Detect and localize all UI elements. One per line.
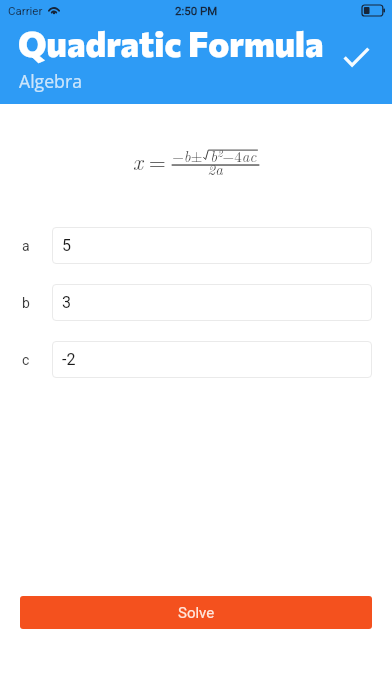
staticText: 2:50 PM <box>175 4 218 17</box>
button[interactable]: 3 <box>52 284 372 321</box>
staticText: -2 <box>62 350 76 369</box>
button[interactable]: Done <box>332 40 380 88</box>
staticText: Algebra <box>19 69 82 93</box>
staticText: 5 <box>62 236 71 255</box>
staticText: Solve <box>178 604 215 622</box>
staticText: b <box>22 295 30 311</box>
button[interactable]: Solve <box>20 596 372 629</box>
button[interactable]: -2 <box>52 341 372 378</box>
staticText: c <box>22 352 30 368</box>
staticText: Carrier <box>8 4 43 17</box>
staticText: a <box>22 238 30 254</box>
staticText: Quadratic Formula <box>18 21 324 64</box>
staticText: 3 <box>62 293 71 312</box>
button[interactable]: 5 <box>52 227 372 264</box>
